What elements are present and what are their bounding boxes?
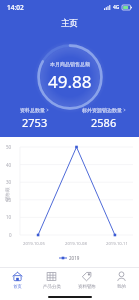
other: 产品分类	[46, 271, 57, 282]
staticText: 本月商品销售总额	[50, 61, 90, 67]
staticText: 50	[6, 144, 12, 150]
staticText: 4G	[113, 4, 120, 11]
button[interactable]: 产品分类	[34, 268, 69, 293]
button[interactable]: 资料销售	[69, 268, 104, 293]
staticText: 资料总数量	[20, 107, 45, 113]
button[interactable]: 我的	[104, 268, 139, 293]
staticText: 2019-10-05	[23, 241, 45, 247]
staticText: 销售额	[5, 187, 11, 201]
button[interactable]: 资料总数量	[0, 105, 69, 132]
staticText: 30	[6, 179, 12, 185]
button[interactable]: 首页	[0, 268, 34, 293]
other: 资料销售	[81, 271, 92, 282]
other: 首页	[12, 271, 23, 282]
staticText: 2586	[91, 115, 117, 130]
other: 我的	[116, 271, 127, 282]
staticText: 10	[6, 214, 12, 220]
staticText: 2753	[22, 115, 48, 130]
staticText: 2019-10-08	[65, 241, 87, 247]
staticText: 资料销售	[78, 284, 96, 290]
staticText: 2019-10-11	[106, 241, 128, 247]
staticText: 0	[9, 232, 12, 238]
staticText: 14:02	[7, 3, 24, 12]
staticText: 主页	[61, 18, 78, 29]
staticText: 2019	[69, 255, 80, 261]
staticText: 我的	[117, 284, 126, 290]
staticText: 首页	[13, 284, 22, 290]
staticText: 标外资源销边数量	[82, 107, 122, 113]
staticText: 49.88	[48, 70, 92, 93]
staticText: 40	[6, 162, 12, 168]
button[interactable]: 标外资源销边数量	[69, 105, 139, 132]
staticText: 20	[6, 197, 12, 203]
staticText: 产品分类	[43, 284, 61, 290]
